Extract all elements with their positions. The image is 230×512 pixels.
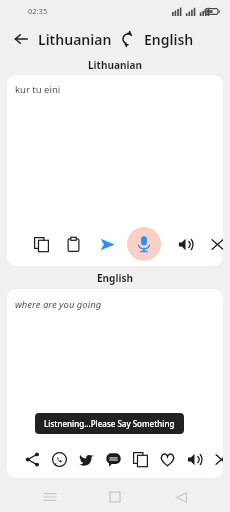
button[interactable]: Back xyxy=(165,482,197,512)
button[interactable]: English xyxy=(144,30,194,49)
staticText: kur tu eini xyxy=(15,83,61,96)
button[interactable]: Twitter xyxy=(74,447,98,471)
button[interactable]: Swap languages xyxy=(118,29,138,49)
staticText: English xyxy=(144,30,194,49)
button[interactable]: Home xyxy=(99,482,131,512)
button[interactable]: Speak xyxy=(182,447,206,471)
button[interactable]: WhatsApp xyxy=(47,447,71,471)
button[interactable]: Copy xyxy=(128,447,152,471)
button[interactable]: Clear xyxy=(205,232,223,256)
button[interactable]: Lithuanian xyxy=(38,30,112,49)
button[interactable]: kur tu eini xyxy=(15,83,215,222)
button[interactable]: Paste xyxy=(61,232,85,256)
button[interactable]: Back xyxy=(8,26,34,52)
button[interactable]: Favourite xyxy=(155,447,179,471)
staticText: Lithuanian xyxy=(88,58,142,72)
staticText: Lithuanian xyxy=(38,30,112,49)
staticText: Listnening...Please Say Something xyxy=(44,418,175,429)
staticText: English xyxy=(97,271,133,285)
button[interactable]: Voice input xyxy=(127,227,161,261)
button[interactable]: SMS xyxy=(101,447,125,471)
button[interactable]: Translate xyxy=(95,232,119,256)
staticText: where are you going xyxy=(15,298,102,311)
button[interactable]: Copy xyxy=(29,232,53,256)
button[interactable]: where are you going xyxy=(15,298,215,440)
button[interactable]: Recents xyxy=(34,482,66,512)
button[interactable]: Close xyxy=(209,447,223,471)
button[interactable]: Share xyxy=(20,447,44,471)
staticText: 02:35 xyxy=(28,6,48,16)
button[interactable]: Speak xyxy=(173,232,197,256)
